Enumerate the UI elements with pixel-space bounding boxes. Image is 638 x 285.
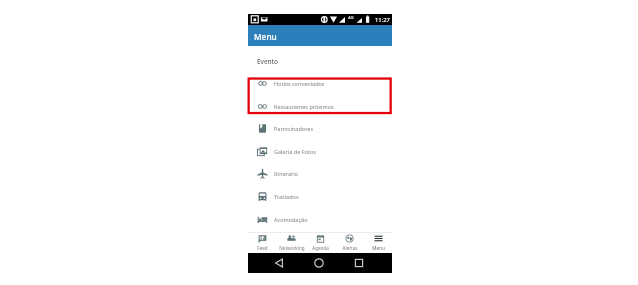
button[interactable]: Networking bbox=[277, 233, 306, 253]
button[interactable]: Itinerário bbox=[248, 162, 392, 184]
button[interactable]: Menu bbox=[364, 233, 392, 253]
button[interactable]: Agenda bbox=[306, 233, 335, 253]
staticText: 4G bbox=[348, 15, 354, 21]
button[interactable]: Acomodação bbox=[248, 208, 392, 230]
button[interactable]: Patrocinadores bbox=[248, 117, 392, 139]
button[interactable]: Hotéis conveniados bbox=[248, 72, 392, 94]
staticText: Menu bbox=[372, 245, 385, 251]
staticText: 11:27 bbox=[375, 16, 390, 24]
staticText: Evento bbox=[257, 57, 278, 66]
button[interactable]: Galeria de Fotos bbox=[248, 140, 392, 162]
staticText: Hotéis conveniados bbox=[274, 80, 325, 87]
button[interactable]: Traslados bbox=[248, 185, 392, 207]
staticText: Alertas bbox=[342, 245, 358, 251]
staticText: Feed bbox=[257, 245, 268, 251]
staticText: Traslados bbox=[274, 193, 299, 200]
staticText: Networking bbox=[279, 245, 305, 251]
staticText: Itinerário bbox=[274, 170, 299, 177]
button[interactable]: Alertas bbox=[335, 233, 364, 253]
button[interactable]: Restaurantes próximos bbox=[248, 95, 392, 117]
staticText: Restaurantes próximos bbox=[274, 103, 334, 110]
staticText: Agenda bbox=[312, 245, 329, 251]
staticText: Acomodação bbox=[274, 216, 308, 223]
button[interactable]: Feed bbox=[248, 233, 277, 253]
staticText: Menu bbox=[254, 31, 277, 42]
staticText: Patrocinadores bbox=[274, 125, 314, 132]
staticText: Galeria de Fotos bbox=[274, 148, 316, 155]
